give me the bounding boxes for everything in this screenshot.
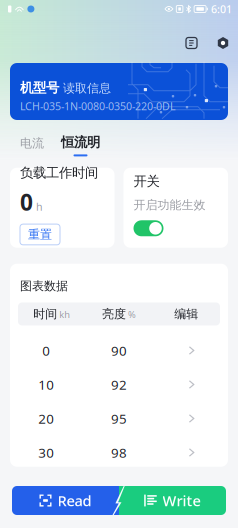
button[interactable]: Settings: [211, 31, 235, 55]
button[interactable]: 电流: [16, 134, 48, 159]
staticText: 恒流明: [61, 134, 100, 150]
staticText: 机型号: [20, 80, 59, 96]
staticText: 92: [111, 376, 127, 393]
staticText: LCH-035-1N-0080-0350-220-0DL: [20, 99, 176, 113]
staticText: 0: [42, 342, 50, 359]
button[interactable]: Toggle: [133, 220, 163, 236]
staticText: 90: [111, 342, 127, 359]
staticText: 时间: [33, 307, 57, 321]
button[interactable]: 10: [10, 367, 228, 401]
staticText: 亮度: [102, 307, 126, 321]
staticText: 95: [111, 410, 127, 427]
staticText: 30: [38, 444, 54, 461]
staticText: 0: [20, 187, 33, 217]
staticText: 读取信息: [63, 81, 111, 96]
button[interactable]: 20: [10, 401, 228, 435]
button[interactable]: Records: [180, 31, 203, 54]
staticText: 开关: [133, 173, 159, 190]
staticText: 20: [38, 410, 54, 427]
button[interactable]: 重置: [20, 224, 60, 245]
button[interactable]: Write: [119, 486, 226, 515]
staticText: h: [36, 200, 43, 214]
staticText: 98: [111, 444, 127, 461]
staticText: 图表数据: [20, 279, 68, 293]
button[interactable]: Read: [12, 486, 119, 515]
staticText: 编辑: [174, 307, 198, 321]
staticText: 开启功能生效: [133, 198, 205, 212]
staticText: 6:01: [211, 2, 232, 16]
button[interactable]: 0: [10, 333, 228, 367]
staticText: 重置: [28, 227, 52, 242]
staticText: Read: [57, 491, 91, 510]
staticText: 负载工作时间: [20, 165, 98, 181]
staticText: 10: [38, 376, 54, 393]
staticText: kh: [59, 308, 70, 321]
staticText: Write: [162, 491, 200, 510]
button[interactable]: 恒流明: [58, 134, 103, 158]
staticText: %: [128, 308, 136, 321]
button[interactable]: 30: [10, 435, 228, 469]
staticText: 电流: [20, 136, 44, 151]
